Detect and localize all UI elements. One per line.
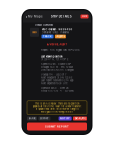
- button[interactable]: SUBMIT REPORT: [23, 122, 91, 133]
- staticText: avoid gaps in the voyage history.: [40, 110, 73, 113]
- staticText: ‹: [25, 14, 27, 19]
- staticText: Operator MSC · Fleet 28: [41, 87, 68, 89]
- button[interactable]: NOTIFY: [59, 117, 72, 120]
- staticText: ESCALATE: [74, 117, 85, 120]
- staticText: Speed 14.2 kn · Course 087°: [41, 63, 71, 66]
- staticText: Relay AIS-SAT 4 · EU-West: [41, 89, 74, 92]
- staticText: ALERTS: [56, 35, 64, 38]
- staticText: TRACK: [43, 35, 52, 38]
- button[interactable]: SHARE: [27, 117, 37, 120]
- staticText: ⚠ VESSEL ALERT: [46, 43, 67, 46]
- staticText: 31.2304° N, 121.4737° E: [41, 58, 68, 61]
- staticText: Last report received 02:14 ago: [41, 79, 73, 82]
- staticText: MSC Gulsun · 9839430: [41, 28, 72, 31]
- staticText: My Maps: [28, 15, 42, 18]
- staticText: or update your alert on a receiver range…: [35, 108, 78, 110]
- staticText: EXPORT: [40, 117, 49, 120]
- staticText: updates at this time. Wait for a new tra…: [32, 105, 81, 108]
- staticText: Last known position: [41, 55, 62, 58]
- staticText: SHARE: [28, 117, 35, 120]
- staticText: Next waypoint 31.9 N 122.8 E: [41, 76, 72, 79]
- staticText: LIVE: [82, 15, 87, 18]
- button[interactable]: ALERTS: [55, 35, 66, 38]
- button[interactable]: ‹: [23, 12, 42, 21]
- staticText: Report: AIS signal lost 18:42 UTC: [41, 48, 80, 51]
- staticText: Draught 16.0 m · ETA 12 Mar: [41, 66, 73, 68]
- staticText: SUBMIT REPORT: [45, 125, 69, 128]
- button[interactable]: EXPORT: [38, 117, 50, 120]
- button[interactable]: LIVE: [80, 14, 91, 18]
- button[interactable]: TRACK: [41, 35, 53, 38]
- staticText: SHIP DETAILS: [51, 15, 72, 18]
- staticText: Vessel Overview: [35, 24, 53, 27]
- staticText: Container Ship · Panama: [41, 31, 68, 34]
- button[interactable]: ESCALATE: [73, 117, 87, 120]
- staticText: Voyage 114 · Leg 3 of 7: [41, 73, 66, 76]
- staticText: Next expected 19:30 UTC: [41, 82, 68, 85]
- staticText: NOTIFY: [60, 117, 70, 120]
- staticText: IMO: [32, 31, 37, 34]
- staticText: This is an AIS Relay. There are no posit…: [35, 102, 79, 105]
- staticText: Destination CNSHA Shanghai: [41, 68, 74, 71]
